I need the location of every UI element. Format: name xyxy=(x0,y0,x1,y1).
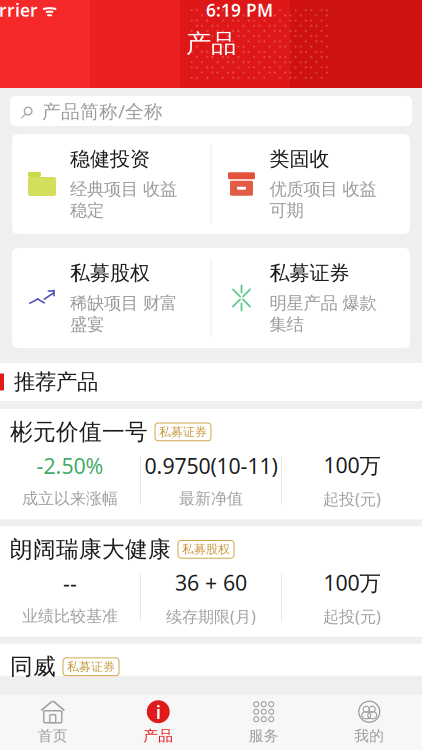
staticText: 私募股权 xyxy=(70,261,150,285)
button[interactable]: 搜索产品简称或全称 xyxy=(10,96,412,126)
staticText: 优质项目 收益可期 xyxy=(269,178,376,221)
staticText: 6:19 PM xyxy=(206,0,273,21)
staticText: Carrier xyxy=(0,0,38,21)
staticText: 私募股权 xyxy=(182,542,230,557)
staticText: 起投(元) xyxy=(323,488,381,509)
staticText: ᯤ xyxy=(38,0,57,21)
staticText: 最新净值 xyxy=(179,489,243,509)
staticText: 成立以来涨幅 xyxy=(22,489,118,509)
staticText: 首页 xyxy=(38,727,68,745)
button[interactable]: 首页 xyxy=(0,694,105,750)
staticText: 产品简称/全称 xyxy=(42,99,163,123)
staticText: 0.9750(10-11) xyxy=(144,452,277,480)
staticText: 同威 xyxy=(10,653,56,681)
staticText: -- xyxy=(63,569,77,597)
staticText: 我的 xyxy=(354,727,384,745)
staticText: 100万 xyxy=(323,568,380,597)
button[interactable]: 稳健投资 xyxy=(12,134,210,234)
staticText: 100万 xyxy=(323,451,380,479)
staticText: 类固收 xyxy=(269,147,329,171)
button[interactable]: i xyxy=(105,694,211,750)
staticText: i xyxy=(156,699,161,724)
button[interactable]: 私募证券 xyxy=(211,248,410,348)
button[interactable]: 彬元价值一号 xyxy=(0,409,422,519)
staticText: 稳健投资 xyxy=(70,147,150,171)
button[interactable]: 服务 xyxy=(211,694,316,750)
staticText: -2.50% xyxy=(36,452,103,480)
button[interactable]: 私募股权 xyxy=(12,248,210,348)
staticText: 稀缺项目 财富盛宴 xyxy=(70,292,177,335)
button[interactable]: 同威 xyxy=(0,644,422,676)
staticText: ⌕ xyxy=(21,99,35,123)
staticText: 彬元价值一号 xyxy=(10,418,148,446)
staticText: 推荐产品 xyxy=(14,369,98,395)
staticText: 起投(元) xyxy=(323,606,381,627)
button[interactable]: 朗阔瑞康大健康 xyxy=(0,526,422,637)
staticText: 产品 xyxy=(143,727,173,745)
staticText: 服务 xyxy=(249,727,279,745)
staticText: 经典项目 收益稳定 xyxy=(70,178,177,221)
staticText: 业绩比较基准 xyxy=(22,606,118,626)
staticText: 私募证券 xyxy=(269,261,349,285)
staticText: 朗阔瑞康大健康 xyxy=(10,535,171,563)
button[interactable]: 我的 xyxy=(316,694,422,750)
staticText: 36 + 60 xyxy=(175,568,247,597)
staticText: 产品 xyxy=(186,28,236,59)
staticText: 续存期限(月) xyxy=(166,606,256,627)
button[interactable]: 类固收 xyxy=(211,134,410,234)
staticText: 私募证券 xyxy=(67,659,115,674)
staticText: 私募证券 xyxy=(159,425,207,439)
staticText: 明星产品 爆款集结 xyxy=(269,292,376,335)
